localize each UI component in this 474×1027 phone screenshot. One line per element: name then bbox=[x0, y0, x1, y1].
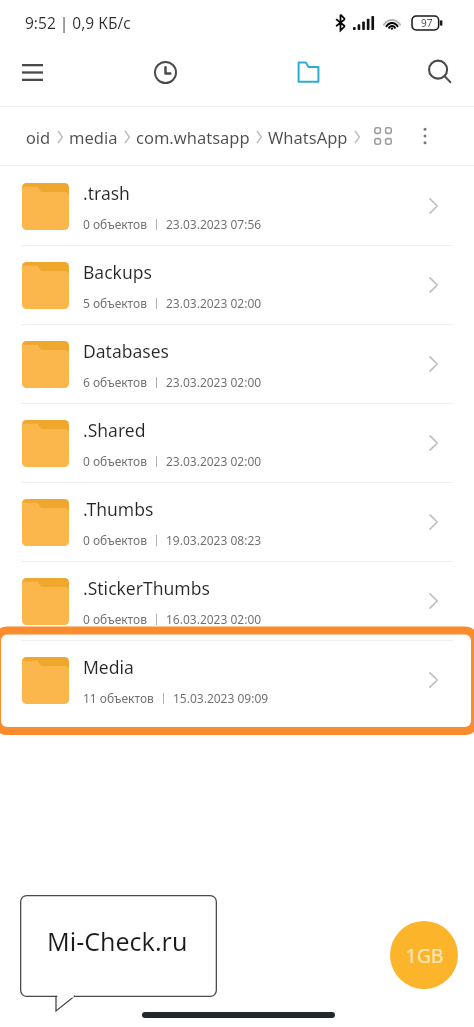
button[interactable]: Media bbox=[0, 641, 474, 720]
button[interactable]: .Thumbs bbox=[0, 483, 474, 562]
staticText: 15.03.2023 09:09 bbox=[173, 690, 269, 706]
staticText: 23.03.2023 07:56 bbox=[166, 216, 262, 232]
staticText: 1GB bbox=[405, 942, 444, 969]
button[interactable]: Menu bbox=[9, 43, 55, 101]
button[interactable]: WhatsApp bbox=[268, 126, 348, 148]
button[interactable]: Recent files bbox=[142, 43, 188, 101]
button[interactable]: Databases bbox=[0, 325, 474, 404]
button[interactable]: .StickerThumbs bbox=[0, 562, 474, 641]
staticText: 0 объектов bbox=[83, 532, 147, 548]
staticText: .StickerThumbs bbox=[83, 576, 210, 600]
staticText: .trash bbox=[83, 181, 130, 205]
staticText: Mi-Check.ru bbox=[47, 924, 188, 958]
staticText: .Thumbs bbox=[83, 497, 154, 521]
staticText: 6 объектов bbox=[83, 374, 147, 390]
button[interactable]: .Shared bbox=[0, 404, 474, 483]
staticText: 0 объектов bbox=[83, 216, 147, 232]
staticText: 23.03.2023 02:00 bbox=[166, 453, 262, 469]
button[interactable]: оid bbox=[26, 126, 51, 148]
staticText: 0 объектов bbox=[83, 611, 147, 627]
button[interactable]: media bbox=[69, 126, 118, 148]
staticText: 5 объектов bbox=[83, 295, 147, 311]
button[interactable]: Backups bbox=[0, 246, 474, 325]
staticText: .Shared bbox=[83, 418, 146, 442]
button[interactable]: Files bbox=[285, 43, 331, 101]
button[interactable]: com.whatsapp bbox=[136, 126, 250, 148]
button[interactable]: Search bbox=[417, 44, 463, 102]
staticText: 19.03.2023 08:23 bbox=[166, 532, 262, 548]
staticText: 9:52 | 0,9 КБ/с bbox=[25, 12, 131, 33]
staticText: 16.03.2023 02:00 bbox=[166, 611, 262, 627]
staticText: 23.03.2023 02:00 bbox=[166, 374, 262, 390]
staticText: Media bbox=[83, 655, 134, 679]
button[interactable]: 1GB bbox=[390, 921, 458, 989]
staticText: 11 объектов bbox=[83, 690, 154, 706]
staticText: 23.03.2023 02:00 bbox=[166, 295, 262, 311]
button[interactable]: .trash bbox=[0, 167, 474, 246]
staticText: Databases bbox=[83, 339, 169, 363]
button[interactable]: More options bbox=[410, 107, 440, 165]
button[interactable]: Grid view bbox=[368, 107, 398, 165]
staticText: 0 объектов bbox=[83, 453, 147, 469]
staticText: Backups bbox=[83, 260, 152, 284]
staticText: 97 bbox=[421, 16, 433, 30]
